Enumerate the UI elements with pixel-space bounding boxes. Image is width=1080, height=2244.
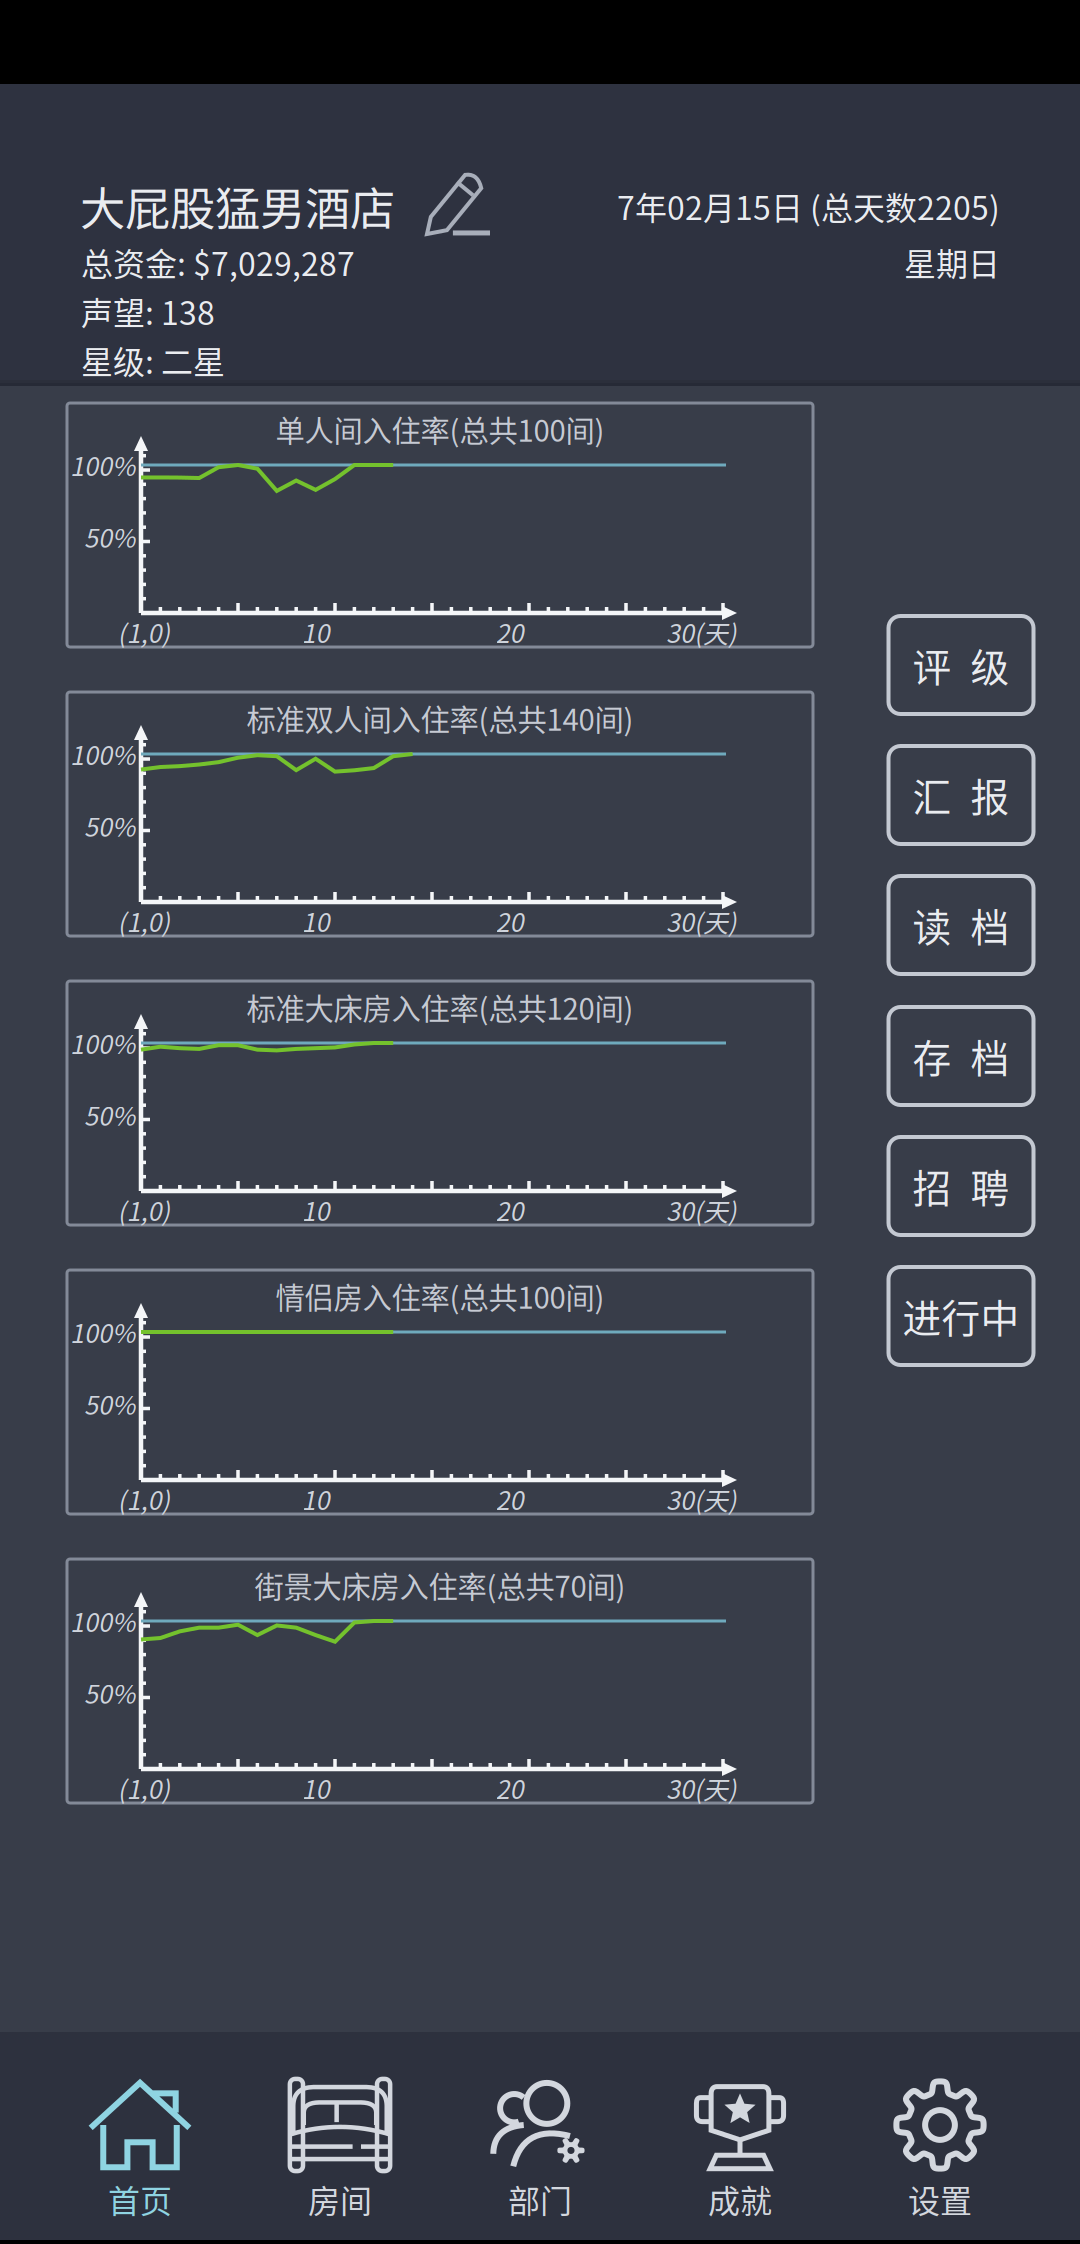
staticText: 20 — [496, 1770, 524, 1806]
button[interactable]: 重命名酒店 — [420, 171, 490, 241]
staticText: 30(天) — [666, 614, 737, 650]
staticText: 100% — [70, 1603, 135, 1639]
staticText: 读 档 — [912, 897, 1009, 953]
button[interactable]: 评 级 — [888, 616, 1033, 714]
staticText: 情侣房入住率(总共100间) — [275, 1275, 604, 1317]
staticText: 10 — [302, 1481, 330, 1517]
staticText: 20 — [496, 1192, 524, 1228]
staticText: (1,0) — [117, 903, 170, 939]
staticText: 10 — [302, 1192, 330, 1228]
staticText: 30(天) — [666, 1481, 737, 1517]
staticText: 总资金: $7,029,287 — [81, 239, 355, 285]
button[interactable]: 进行中 — [888, 1267, 1033, 1365]
button[interactable]: 招 聘 — [888, 1137, 1033, 1235]
staticText: 声望: 138 — [81, 288, 215, 334]
button[interactable]: 读 档 — [888, 876, 1033, 974]
staticText: 大屁股猛男酒店 — [80, 173, 395, 239]
staticText: 星级: 二星 — [81, 337, 225, 383]
staticText: 房间 — [308, 2176, 372, 2222]
staticText: 50% — [84, 518, 135, 555]
button[interactable]: 汇 报 — [888, 746, 1033, 844]
staticText: 招 聘 — [912, 1158, 1009, 1214]
button[interactable]: 存 档 — [888, 1007, 1033, 1105]
staticText: 存 档 — [912, 1028, 1009, 1084]
staticText: 标准双人间入住率(总共140间) — [246, 697, 633, 739]
staticText: 30(天) — [666, 903, 737, 939]
staticText: 评 级 — [912, 637, 1009, 693]
staticText: 进行中 — [902, 1288, 1019, 1344]
staticText: (1,0) — [117, 1770, 170, 1806]
staticText: (1,0) — [117, 1192, 170, 1228]
button[interactable]: 房间 — [240, 2032, 440, 2240]
staticText: 50% — [84, 1385, 135, 1422]
staticText: 50% — [84, 1096, 135, 1133]
staticText: 30(天) — [666, 1770, 737, 1806]
staticText: 标准大床房入住率(总共120间) — [246, 986, 633, 1028]
button[interactable]: 部门 — [440, 2032, 640, 2240]
staticText: 星期日 — [904, 239, 1000, 285]
staticText: 单人间入住率(总共100间) — [275, 408, 604, 450]
staticText: 街景大床房入住率(总共70间) — [254, 1564, 625, 1606]
staticText: 30(天) — [666, 1192, 737, 1228]
staticText: 20 — [496, 903, 524, 939]
staticText: 设置 — [908, 2176, 972, 2222]
button[interactable]: 成就 — [640, 2032, 840, 2240]
staticText: 20 — [496, 1481, 524, 1517]
staticText: 100% — [70, 1025, 135, 1061]
staticText: 汇 报 — [912, 767, 1009, 823]
button[interactable]: 设置 — [840, 2032, 1040, 2240]
staticText: (1,0) — [117, 1481, 170, 1517]
staticText: 7年02月15日 (总天数2205) — [617, 183, 1000, 229]
staticText: 50% — [84, 807, 135, 844]
staticText: (1,0) — [117, 614, 170, 650]
staticText: 10 — [302, 1770, 330, 1806]
staticText: 首页 — [108, 2176, 172, 2222]
staticText: 10 — [302, 614, 330, 650]
staticText: 20 — [496, 614, 524, 650]
staticText: 100% — [70, 736, 135, 772]
staticText: 10 — [302, 903, 330, 939]
staticText: 50% — [84, 1674, 135, 1711]
staticText: 100% — [70, 447, 135, 483]
staticText: 成就 — [708, 2176, 772, 2222]
staticText: 部门 — [508, 2176, 572, 2222]
staticText: 100% — [70, 1314, 135, 1350]
button[interactable]: 首页 — [40, 2032, 240, 2240]
